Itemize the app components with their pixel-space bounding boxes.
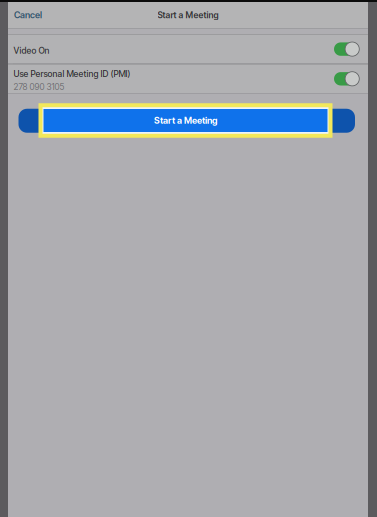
button[interactable]: Start a Meeting — [18, 114, 355, 138]
staticText: 278 090 3105 — [13, 82, 64, 92]
staticText: Cancel — [14, 9, 42, 20]
button[interactable]: Video On — [8, 35, 368, 64]
button[interactable]: Use Personal Meeting ID (PMI) — [8, 64, 368, 93]
staticText: Start a Meeting — [157, 10, 218, 20]
button[interactable]: Cancel — [8, 4, 48, 25]
staticText: Video On — [13, 45, 49, 56]
staticText: Use Personal Meeting ID (PMI) — [13, 69, 130, 79]
staticText: Start a Meeting — [154, 115, 217, 126]
